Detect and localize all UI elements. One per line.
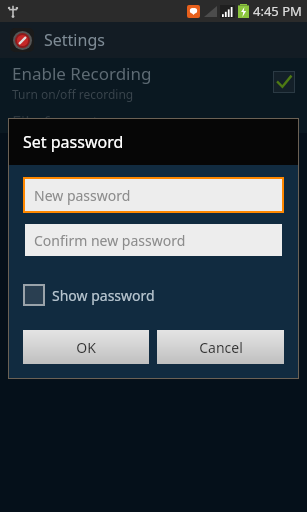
staticText: Confirm new password: [34, 231, 186, 250]
button[interactable]: Enable Recording: [0, 58, 307, 106]
staticText: Cancel: [199, 338, 243, 357]
staticText: 4:45 PM: [253, 2, 302, 20]
button[interactable]: Cancel: [157, 330, 284, 364]
staticText: Show password: [52, 286, 155, 305]
staticText: Set password: [23, 131, 124, 153]
staticText: New password: [34, 186, 131, 205]
button[interactable]: Settings: [0, 22, 307, 58]
staticText: OK: [76, 338, 96, 357]
staticText: Settings: [44, 29, 105, 51]
button[interactable]: Confirm new password: [25, 224, 282, 256]
staticText: File format: [12, 110, 99, 133]
staticText: Enable Recording: [12, 62, 152, 85]
staticText: Turn on/off recording: [12, 86, 134, 102]
button[interactable]: OK: [23, 330, 149, 364]
button[interactable]: Show password: [23, 282, 155, 308]
button[interactable]: New password: [25, 179, 282, 211]
